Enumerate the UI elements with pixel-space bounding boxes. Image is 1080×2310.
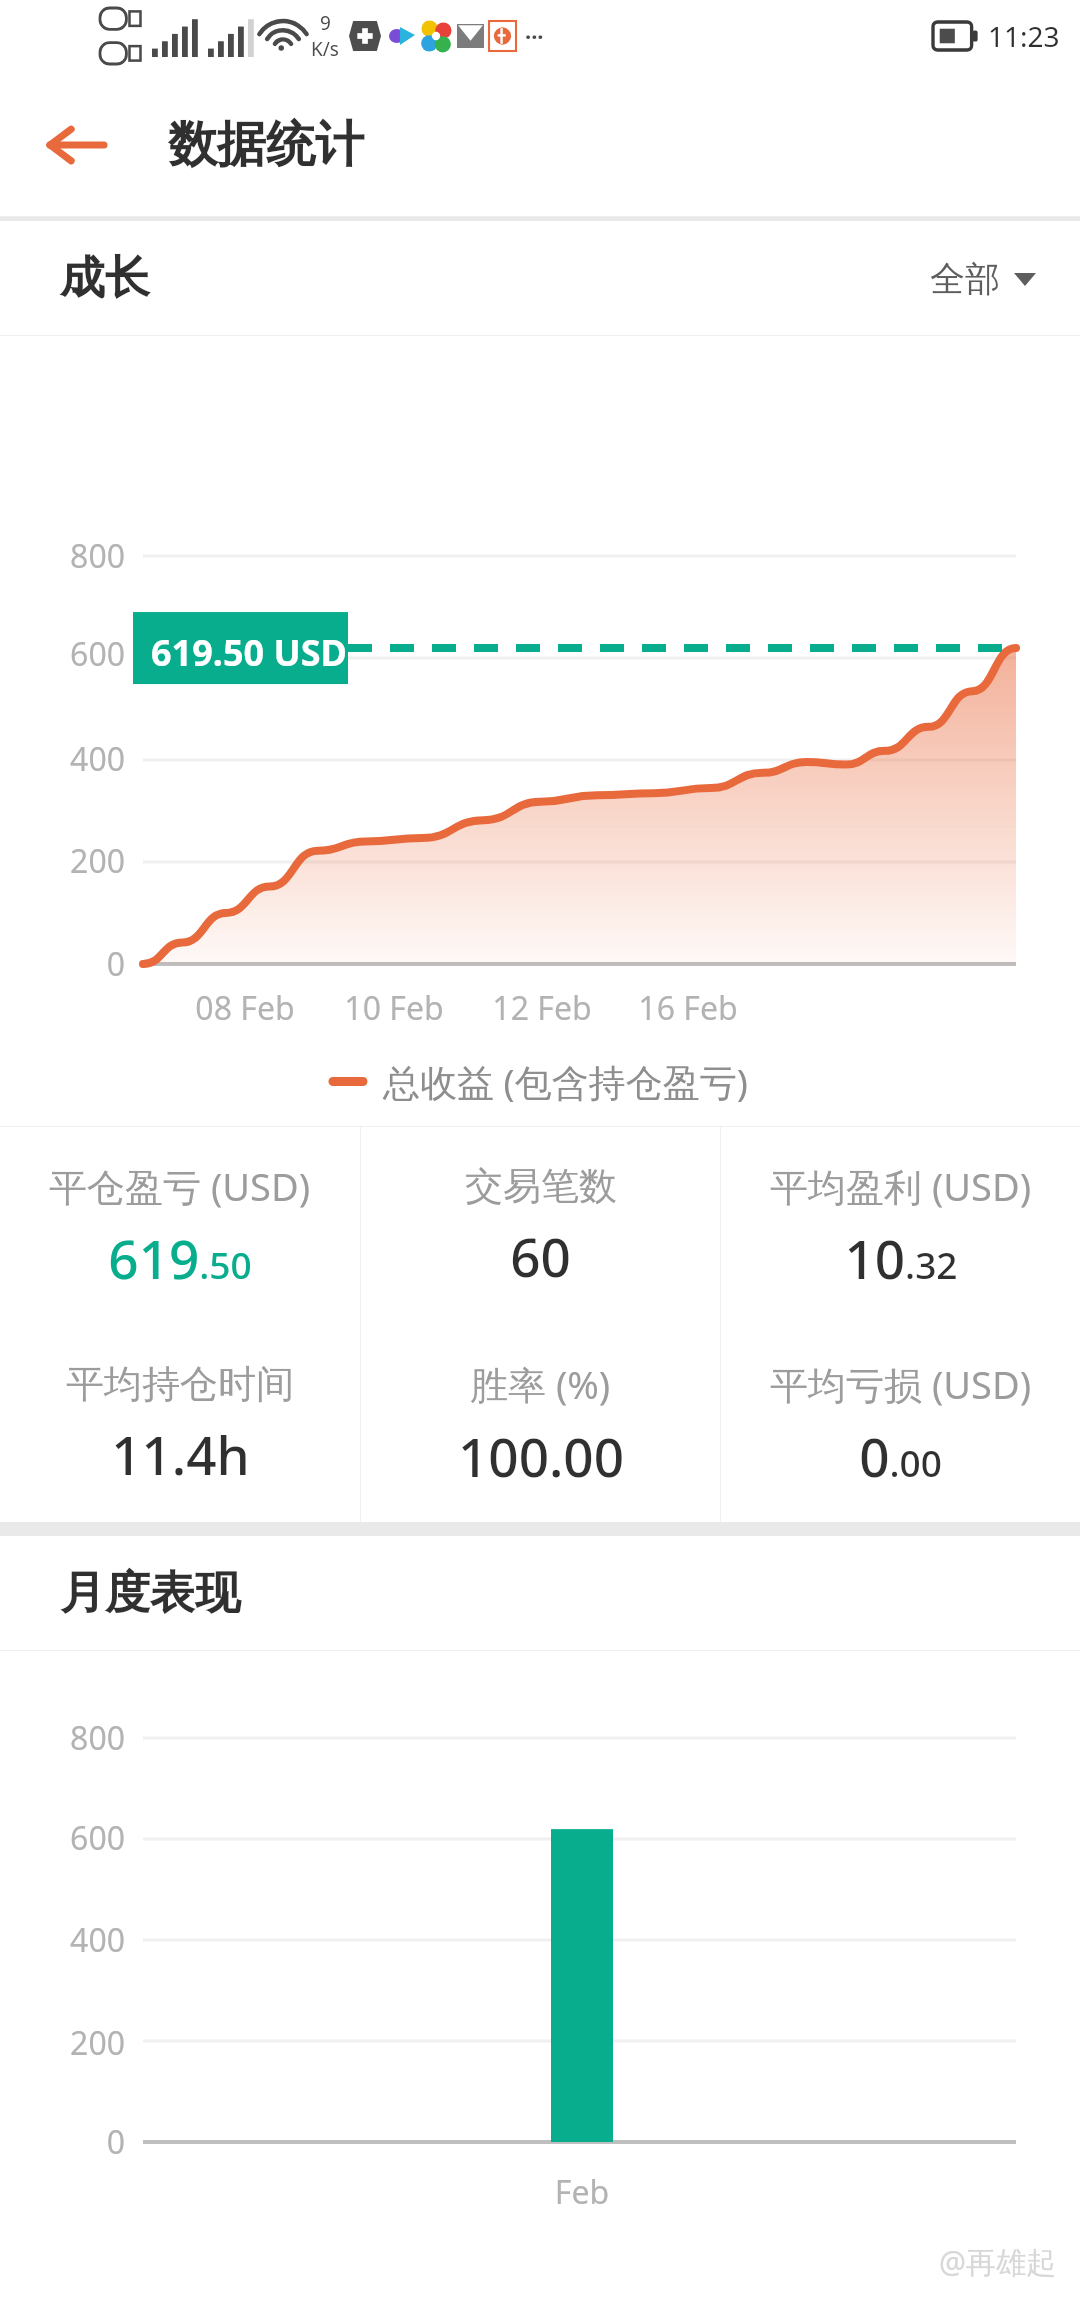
- staticText: 平仓盈亏 (USD): [49, 1160, 311, 1212]
- staticText: 400: [0, 1918, 125, 1962]
- button[interactable]: 平仓盈亏 (USD): [0, 1127, 360, 1327]
- staticText: 800: [0, 534, 125, 578]
- staticText: 平均持仓时间: [66, 1360, 294, 1408]
- staticText: 600: [0, 1816, 125, 1860]
- staticText: 11.4h: [111, 1418, 250, 1490]
- staticText: 0: [0, 942, 125, 986]
- staticText: ···: [525, 21, 544, 51]
- staticText: 08 Feb: [175, 986, 315, 1030]
- button[interactable]: 全部: [922, 249, 1044, 309]
- staticText: 9: [320, 10, 331, 36]
- staticText: Feb: [512, 2170, 652, 2214]
- staticText: 交易笔数: [465, 1162, 617, 1210]
- staticText: 10 Feb: [324, 986, 464, 1030]
- staticText: 100.00: [458, 1420, 624, 1492]
- button[interactable]: 平均盈利 (USD): [721, 1127, 1080, 1327]
- button[interactable]: 平均持仓时间: [0, 1327, 360, 1522]
- staticText: 619.50 USD: [151, 628, 347, 677]
- staticText: 月度表现: [60, 1565, 240, 1622]
- staticText: 200: [0, 839, 125, 883]
- button[interactable]: 返回: [38, 107, 114, 183]
- staticText: 16 Feb: [618, 986, 758, 1030]
- staticText: 全部: [930, 257, 1000, 301]
- staticText: 200: [0, 2021, 125, 2065]
- staticText: 平均亏损 (USD): [770, 1358, 1032, 1410]
- staticText: 成长: [60, 250, 150, 307]
- staticText: 11:23: [988, 17, 1060, 55]
- button[interactable]: 胜率 (%): [361, 1327, 720, 1522]
- staticText: 400: [0, 737, 125, 781]
- staticText: 0.00: [859, 1420, 942, 1492]
- staticText: 10.32: [844, 1222, 958, 1294]
- staticText: 0: [0, 2120, 125, 2164]
- staticText: 总收益 (包含持仓盈亏): [383, 1056, 748, 1107]
- staticText: 平均盈利 (USD): [770, 1160, 1032, 1212]
- staticText: 60: [510, 1220, 571, 1292]
- staticText: 800: [0, 1716, 125, 1760]
- staticText: 619.50: [108, 1222, 252, 1294]
- staticText: K/s: [311, 36, 339, 62]
- staticText: 12 Feb: [472, 986, 612, 1030]
- staticText: 胜率 (%): [470, 1358, 611, 1410]
- staticText: 600: [0, 632, 125, 676]
- button[interactable]: 平均亏损 (USD): [721, 1327, 1080, 1522]
- button[interactable]: 交易笔数: [361, 1127, 720, 1327]
- staticText: 数据统计: [168, 114, 364, 176]
- staticText: @再雄起: [939, 2241, 1056, 2282]
